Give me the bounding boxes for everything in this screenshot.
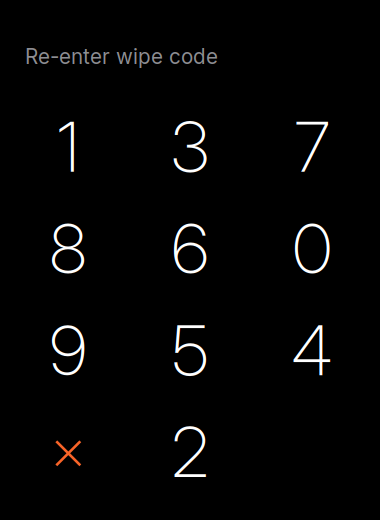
- button[interactable]: 4: [251, 299, 373, 401]
- staticText: 7: [294, 105, 329, 188]
- button[interactable]: 6: [129, 198, 251, 299]
- button[interactable]: 9: [7, 299, 129, 401]
- button[interactable]: 5: [129, 299, 251, 401]
- staticText: 0: [292, 207, 331, 290]
- staticText: 1: [57, 105, 79, 188]
- button[interactable]: 8: [7, 198, 129, 299]
- staticText: Re-enter wipe code: [25, 44, 218, 69]
- staticText: 9: [49, 309, 86, 392]
- staticText: 6: [171, 207, 208, 290]
- button[interactable]: 2: [129, 401, 251, 503]
- button[interactable]: 1: [7, 96, 129, 198]
- staticText: 3: [171, 105, 209, 188]
- button[interactable]: Delete: [7, 401, 129, 503]
- staticText: 5: [172, 309, 208, 392]
- button[interactable]: 0: [251, 198, 373, 299]
- staticText: 4: [291, 309, 332, 392]
- staticText: 2: [171, 410, 208, 493]
- button[interactable]: 3: [129, 96, 251, 198]
- button[interactable]: 7: [251, 96, 373, 198]
- staticText: 8: [49, 207, 86, 290]
